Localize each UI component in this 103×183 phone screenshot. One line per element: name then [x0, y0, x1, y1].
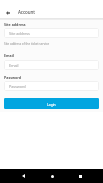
button[interactable]: Recents: [72, 169, 88, 183]
button[interactable]: Login: [4, 98, 99, 109]
button[interactable]: Site address: [4, 28, 99, 38]
button[interactable]: Back: [0, 5, 15, 20]
button[interactable]: Back: [15, 169, 31, 183]
staticText: Password: [9, 84, 26, 89]
staticText: Login: [47, 102, 56, 106]
staticText: Site address of the ticket service: [4, 42, 50, 46]
staticText: Site address: [4, 22, 26, 27]
button[interactable]: Password: [4, 81, 99, 91]
staticText: Site address: [9, 31, 30, 36]
button[interactable]: Email: [4, 60, 99, 70]
staticText: Account: [18, 9, 35, 15]
staticText: Email: [9, 63, 19, 68]
button[interactable]: Home: [44, 169, 60, 183]
staticText: Email: [4, 53, 14, 58]
staticText: Password: [4, 75, 22, 80]
